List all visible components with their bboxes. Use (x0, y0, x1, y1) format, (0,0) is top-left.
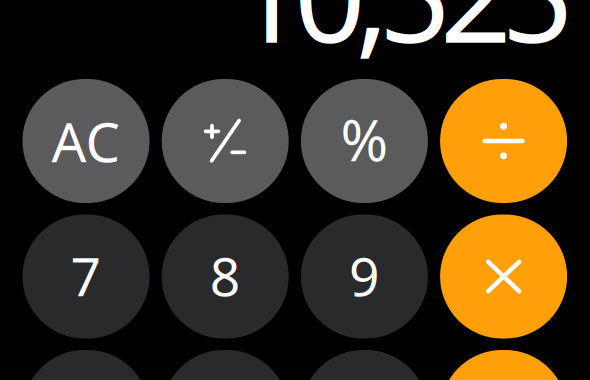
button[interactable]: 9 (301, 214, 428, 338)
button[interactable]: Multiply (440, 214, 567, 338)
button[interactable]: 6 (301, 350, 428, 380)
button[interactable]: Toggle sign (162, 79, 289, 203)
staticText: 8 (210, 240, 241, 311)
staticText: 7 (70, 240, 101, 311)
staticText: AC (51, 105, 120, 177)
button[interactable]: Divide (440, 79, 567, 203)
button[interactable]: Subtract (440, 350, 567, 380)
button[interactable]: % (301, 79, 428, 203)
button[interactable]: 7 (22, 214, 149, 338)
button[interactable]: 4 (22, 350, 149, 380)
staticText: 9 (349, 240, 380, 311)
button[interactable]: AC (22, 79, 149, 203)
button[interactable]: 8 (162, 214, 289, 338)
button[interactable]: 5 (162, 350, 289, 380)
staticText: % (340, 101, 388, 177)
staticText: 10,525 (232, 0, 573, 77)
